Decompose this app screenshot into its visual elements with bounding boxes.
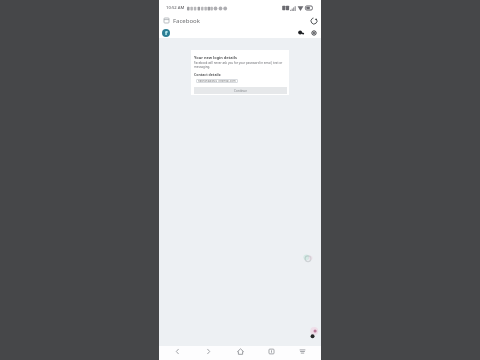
button[interactable]: Page info: [162, 16, 171, 25]
button[interactable]: Continue: [194, 87, 287, 94]
button[interactable]: Reload: [308, 15, 319, 26]
button[interactable]: Account: [308, 27, 319, 38]
button[interactable]: Forward: [196, 346, 221, 357]
staticText: Continue: [234, 89, 247, 93]
staticText: Facebook: [173, 17, 200, 25]
button[interactable]: Back: [165, 346, 190, 357]
button[interactable]: Facebook home: [162, 29, 170, 37]
staticText: f: [165, 29, 168, 37]
staticText: Your new login details: [194, 55, 237, 60]
button[interactable]: Search: [295, 27, 306, 38]
staticText: 10:52 AM: [166, 5, 185, 11]
button[interactable]: Menu: [290, 346, 315, 357]
staticText: nathanbailey21@gmail.com: [198, 79, 236, 83]
staticText: Contact details:: [194, 72, 222, 77]
button[interactable]: Tabs: [259, 346, 284, 357]
button[interactable]: Home: [228, 346, 253, 357]
staticText: Facebook will never ask you for your pas…: [194, 61, 283, 69]
